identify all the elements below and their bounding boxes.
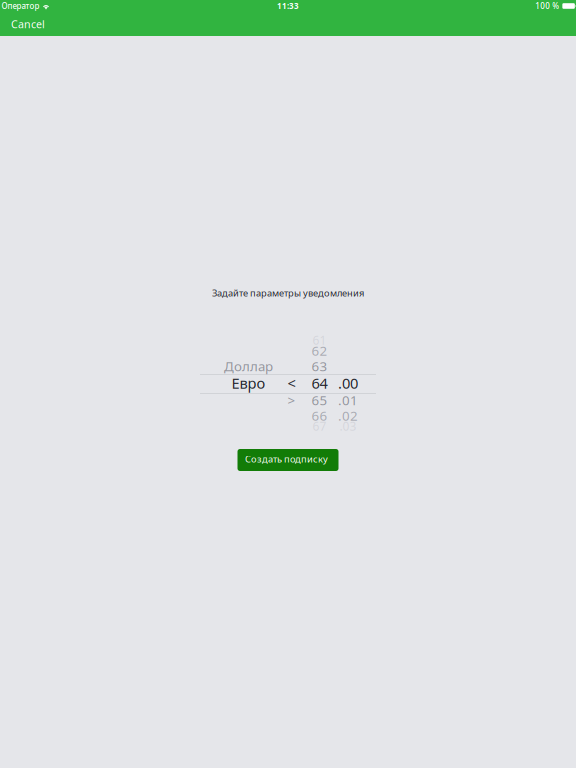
button[interactable]: Целая часть: [306, 333, 332, 433]
button[interactable]: Cancel: [0, 12, 56, 36]
staticText: 64: [311, 373, 327, 393]
staticText: >: [287, 391, 295, 409]
staticText: Создать подписку: [245, 453, 328, 465]
staticText: .03: [339, 418, 356, 434]
staticText: Задайте параметры уведомления: [212, 287, 364, 299]
staticText: .02: [338, 407, 358, 424]
staticText: 67: [312, 418, 326, 434]
button[interactable]: Дробная часть: [334, 333, 362, 433]
staticText: 63: [311, 357, 327, 375]
staticText: 11:33: [277, 1, 299, 11]
button[interactable]: Создать подписку: [237, 449, 338, 471]
staticText: <: [287, 373, 295, 393]
button[interactable]: Валюта: [222, 333, 274, 433]
staticText: 62: [311, 342, 327, 359]
button[interactable]: Условие: [281, 333, 301, 433]
staticText: .00: [338, 373, 358, 393]
staticText: .01: [338, 391, 358, 409]
staticText: Оператор: [1, 1, 39, 11]
staticText: Cancel: [11, 17, 45, 31]
staticText: 66: [311, 407, 327, 424]
staticText: Евро: [231, 373, 265, 393]
staticText: 65: [311, 391, 327, 409]
staticText: 100 %: [535, 1, 559, 11]
staticText: 61: [312, 332, 326, 348]
staticText: Доллар: [224, 357, 273, 375]
